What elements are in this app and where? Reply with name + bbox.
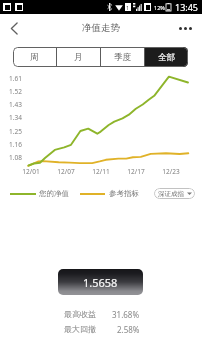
button[interactable]: Back [0, 14, 28, 42]
staticText: 1.5658 [83, 275, 118, 290]
staticText: 31.68% [112, 309, 140, 320]
button[interactable]: 1.5658 [58, 269, 143, 295]
staticText: 1.25 [9, 127, 22, 136]
staticText: 2.58% [117, 324, 140, 335]
staticText: 12/17 [127, 167, 145, 176]
staticText: 1.52 [9, 87, 22, 96]
staticText: 12% [154, 4, 165, 11]
staticText: 深证成指 [158, 190, 184, 198]
staticText: 全部 [158, 52, 175, 63]
staticText: 净值走势 [82, 22, 120, 34]
staticText: 12/07 [57, 167, 75, 176]
staticText: 1.16 [9, 140, 22, 149]
button[interactable]: 全部 [144, 47, 188, 67]
staticText: 12/11 [92, 167, 110, 176]
staticText: 最高收益 [64, 309, 96, 319]
staticText: 13:45 [175, 1, 199, 13]
staticText: 1.43 [9, 100, 22, 109]
staticText: 月 [74, 52, 83, 63]
staticText: 1 [126, 4, 130, 11]
staticText: 12/23 [162, 167, 180, 176]
staticText: 12/01 [22, 167, 40, 176]
staticText: 季度 [114, 52, 131, 63]
button[interactable]: 季度 [100, 47, 144, 67]
button[interactable]: 深证成指 [158, 188, 192, 199]
staticText: 1.61 [9, 74, 22, 83]
staticText: 您的净值 [39, 189, 69, 198]
button[interactable]: More options [168, 14, 202, 42]
staticText: 1.08 [9, 153, 22, 162]
staticText: 最大回撤 [64, 324, 96, 334]
button[interactable]: 周 [13, 47, 56, 67]
staticText: 周 [30, 52, 39, 63]
button[interactable]: 月 [56, 47, 100, 67]
staticText: 参考指标 [109, 189, 139, 198]
staticText: 1.34 [9, 113, 22, 122]
